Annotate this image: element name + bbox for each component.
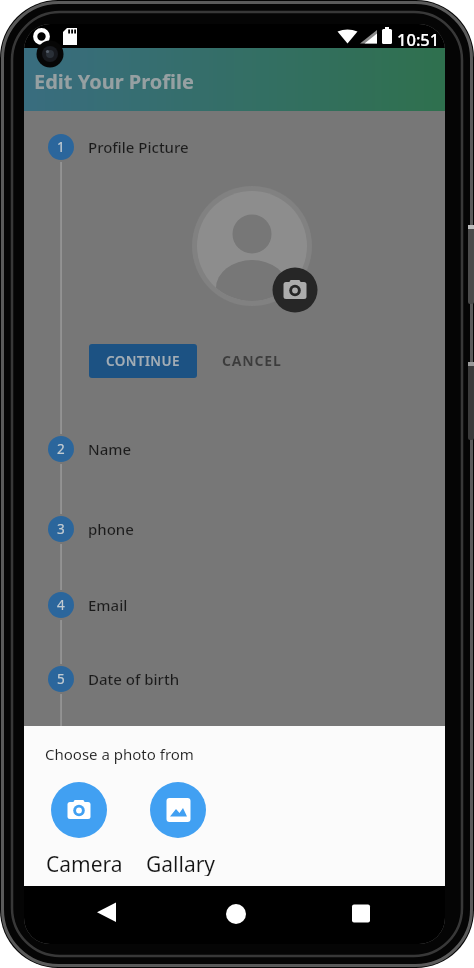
staticText: Profile Picture — [88, 137, 189, 157]
staticText: phone — [88, 519, 134, 539]
staticText: Gallary — [146, 850, 216, 876]
staticText: 2 — [57, 440, 65, 458]
button[interactable]: CONTINUE — [89, 344, 197, 378]
staticText: 4 — [57, 596, 65, 614]
button[interactable] — [305, 886, 445, 944]
staticText: Name — [88, 439, 132, 459]
staticText: 1 — [57, 138, 65, 156]
staticText: CANCEL — [222, 351, 282, 370]
staticText: Date of birth — [88, 669, 180, 689]
button[interactable] — [150, 782, 206, 838]
staticText: 10:51 — [397, 28, 440, 50]
staticText: Camera — [46, 850, 123, 876]
button[interactable]: CANCEL — [214, 344, 290, 376]
staticText: CONTINUE — [106, 352, 180, 370]
staticText: Email — [88, 595, 128, 615]
button[interactable] — [51, 782, 107, 838]
button[interactable] — [24, 886, 165, 944]
button[interactable] — [165, 886, 305, 944]
button[interactable]: Camera — [44, 850, 124, 876]
staticText: Edit Your Profile — [34, 68, 194, 95]
staticText: 5 — [57, 670, 65, 688]
button[interactable]: Gallary — [141, 850, 221, 876]
staticText: Choose a photo from — [45, 744, 194, 764]
staticText: 3 — [57, 520, 65, 538]
